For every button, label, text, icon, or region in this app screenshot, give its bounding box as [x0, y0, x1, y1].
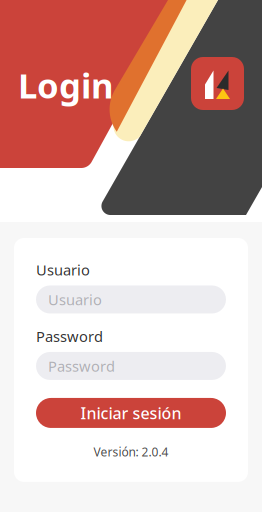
staticText: Login	[18, 62, 114, 108]
staticText: Password	[36, 326, 103, 346]
staticText: Usuario	[48, 290, 102, 309]
staticText: Versión: 2.0.4	[93, 444, 168, 460]
staticText: Usuario	[36, 260, 90, 279]
button[interactable]: Iniciar sesión	[36, 398, 226, 428]
staticText: Iniciar sesión	[80, 402, 181, 423]
staticText: Password	[48, 356, 115, 376]
